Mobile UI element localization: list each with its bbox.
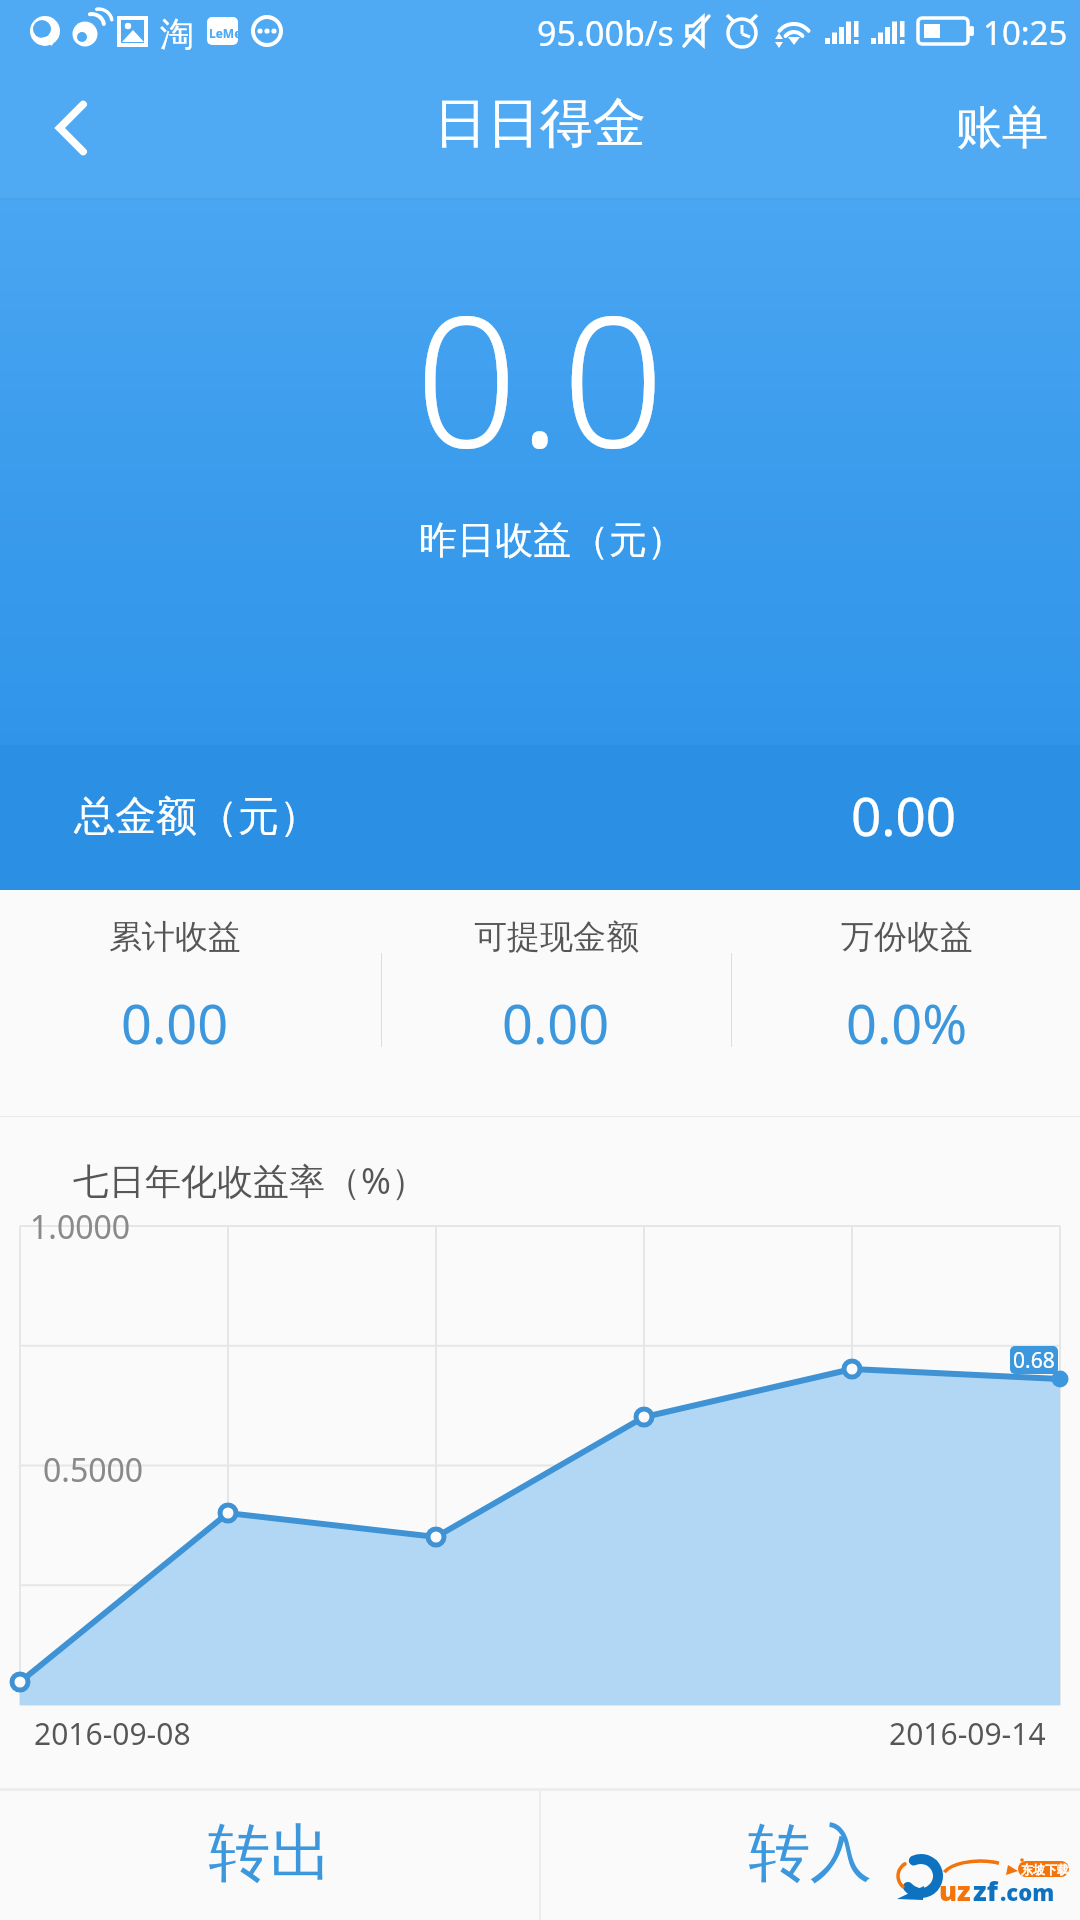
staticText: 账单 [956,99,1048,157]
staticText: 昨日收益（元） [419,516,685,564]
button[interactable]: 转入 [540,1788,1080,1920]
staticText: 0.00 [502,986,610,1060]
button[interactable]: 可提现金额 [381,890,731,1117]
button[interactable]: 累计收益 [0,890,381,1117]
staticText: 2016-09-08 [34,1713,191,1754]
staticText: 95.00b/s [537,10,674,56]
staticText: 万份收益 [841,916,973,958]
staticText: 2016-09-14 [889,1713,1046,1754]
staticText: 10:25 [983,10,1068,55]
staticText: 总金额（元） [74,791,320,843]
staticText: 0.68 [1013,1346,1055,1374]
staticText: 0.00 [121,986,229,1060]
staticText: uz [939,1872,971,1909]
staticText: 东坡下载 [1021,1862,1069,1877]
button[interactable]: 万份收益 [731,890,1080,1117]
staticText: 1.0000 [30,1205,131,1249]
staticText: LeMe [209,25,242,41]
staticText: 0.0 [415,255,665,500]
button[interactable]: 账单 [926,66,1080,200]
staticText: 转入 [748,1814,872,1892]
staticText: 七日年化收益率（%） [73,1156,427,1205]
staticText: 转出 [208,1814,332,1892]
staticText: 0.0% [846,986,968,1060]
staticText: 可提现金额 [474,916,639,958]
button[interactable]: 返回 [0,66,142,200]
staticText: 0.5000 [43,1448,144,1492]
staticText: 淘 [160,13,194,56]
staticText: 日日得金 [434,90,646,157]
staticText: 累计收益 [109,916,241,958]
staticText: .com [1000,1877,1055,1907]
staticText: 0.00 [851,779,957,851]
staticText: zf [973,1872,998,1909]
button[interactable]: 转出 [0,1788,540,1920]
